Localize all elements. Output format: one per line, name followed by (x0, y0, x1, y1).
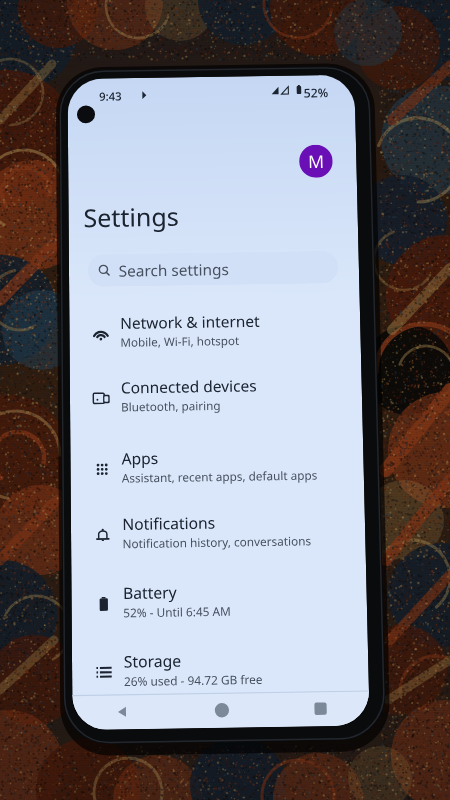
button[interactable]: Notifications (71, 493, 366, 564)
staticText: Notifications (122, 511, 216, 534)
button[interactable]: Battery (71, 562, 367, 633)
button[interactable]: Account (299, 144, 333, 178)
staticText: Notification history, conversations (122, 532, 312, 551)
staticText: Apps (121, 447, 159, 469)
button[interactable]: Recents (270, 690, 370, 727)
staticText: 26% used - 94.72 GB free (124, 670, 263, 689)
button[interactable]: Apps (70, 428, 364, 499)
staticText: Search settings (118, 258, 229, 281)
button[interactable]: Connected devices (70, 357, 363, 427)
staticText: Bluetooth, pairing (121, 397, 221, 414)
staticText: 52% (303, 85, 328, 101)
staticText: Storage (124, 649, 182, 672)
staticText: M (308, 149, 325, 174)
staticText: Mobile, Wi-Fi, hotspot (120, 332, 240, 350)
staticText: 52% - Until 6:45 AM (123, 602, 232, 620)
staticText: Network & internet (120, 310, 260, 333)
staticText: 9:43 (99, 89, 122, 105)
button[interactable]: Network & internet (69, 293, 361, 362)
staticText: Battery (123, 581, 178, 603)
staticText: Settings (83, 199, 180, 234)
staticText: Assistant, recent apps, default apps (122, 466, 318, 486)
button[interactable]: Home (172, 692, 271, 728)
button[interactable]: Storage (72, 630, 369, 702)
button[interactable]: Back (72, 693, 172, 730)
button[interactable]: Search settings (88, 251, 338, 287)
staticText: Connected devices (121, 374, 257, 397)
